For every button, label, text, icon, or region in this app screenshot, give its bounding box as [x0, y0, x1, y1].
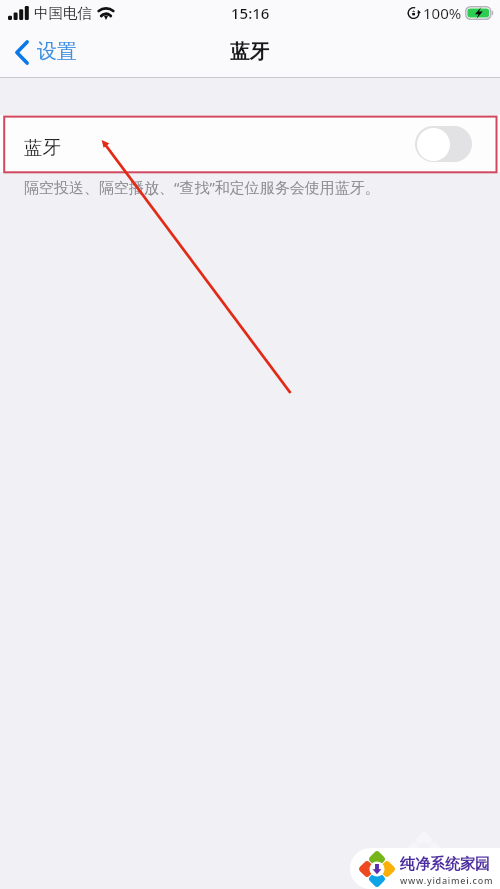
- staticText: 蓝牙: [230, 39, 269, 64]
- staticText: 设置: [37, 39, 77, 64]
- staticText: 隔空投送、隔空播放、“查找”和定位服务会使用蓝牙。: [24, 177, 380, 197]
- staticText: 15:16: [231, 3, 270, 23]
- button[interactable]: 蓝牙: [0, 115, 500, 172]
- button[interactable]: Back: [0, 33, 89, 72]
- staticText: 蓝牙: [24, 136, 61, 159]
- staticText: www.yidaimei.com: [400, 874, 494, 886]
- staticText: 中国电信: [34, 4, 92, 22]
- staticText: 100%: [423, 3, 462, 23]
- other: Back: [15, 40, 29, 65]
- staticText: 纯净系统家园: [400, 855, 490, 874]
- button[interactable]: Bluetooth toggle: [415, 126, 472, 162]
